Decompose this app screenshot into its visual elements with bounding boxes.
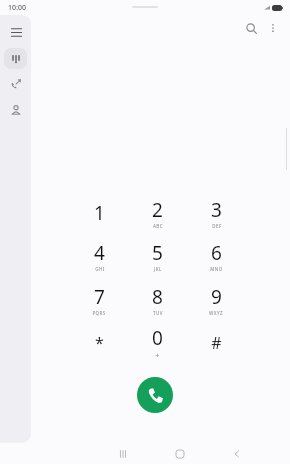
staticText: 9 bbox=[211, 284, 222, 310]
staticText: 7 bbox=[94, 284, 105, 310]
staticText: 10:00 bbox=[8, 3, 26, 13]
button[interactable]: Search bbox=[240, 17, 262, 39]
button[interactable]: 5 bbox=[135, 236, 179, 276]
button[interactable]: 8 bbox=[135, 280, 179, 320]
staticText: 5 bbox=[152, 240, 163, 266]
button[interactable]: 3 bbox=[194, 193, 238, 233]
button[interactable]: More options bbox=[262, 17, 284, 39]
staticText: 2 bbox=[152, 197, 163, 223]
button[interactable]: Recent apps bbox=[113, 444, 133, 464]
button[interactable]: # bbox=[194, 323, 238, 363]
button[interactable]: 9 bbox=[194, 280, 238, 320]
button[interactable]: Recents bbox=[5, 73, 27, 95]
staticText: WXYZ bbox=[209, 310, 223, 316]
staticText: * bbox=[95, 332, 104, 354]
staticText: 6 bbox=[211, 240, 222, 266]
button[interactable]: 6 bbox=[194, 236, 238, 276]
button[interactable]: Home bbox=[170, 444, 190, 464]
button[interactable]: Contacts bbox=[5, 99, 27, 121]
button[interactable]: 2 bbox=[135, 193, 179, 233]
button[interactable]: * bbox=[77, 323, 121, 363]
staticText: ABC bbox=[153, 223, 163, 229]
staticText: PQRS bbox=[92, 310, 106, 316]
button[interactable]: 7 bbox=[77, 280, 121, 320]
button[interactable]: Menu bbox=[3, 19, 29, 45]
staticText: + bbox=[155, 351, 160, 361]
staticText: MNO bbox=[210, 266, 223, 272]
staticText: 3 bbox=[211, 197, 222, 223]
button[interactable]: 1 bbox=[77, 193, 121, 233]
staticText: # bbox=[211, 332, 222, 354]
staticText: 1 bbox=[94, 200, 105, 226]
staticText: JKL bbox=[154, 266, 162, 272]
staticText: 4 bbox=[94, 240, 105, 266]
button[interactable]: Keypad bbox=[4, 48, 27, 69]
staticText: DEF bbox=[212, 223, 222, 229]
staticText: GHI bbox=[95, 266, 105, 272]
button[interactable]: Call bbox=[137, 377, 173, 413]
button[interactable]: 4 bbox=[77, 236, 121, 276]
button[interactable]: 0 bbox=[135, 323, 179, 363]
staticText: 8 bbox=[152, 284, 163, 310]
staticText: 0 bbox=[152, 325, 163, 351]
staticText: TUV bbox=[153, 310, 163, 316]
button[interactable]: Back bbox=[227, 444, 247, 464]
